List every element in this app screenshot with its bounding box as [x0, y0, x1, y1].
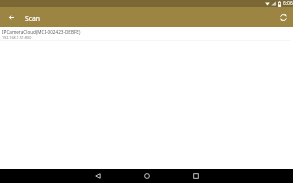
staticText: 192.168.1.51:800 [2, 35, 32, 40]
staticText: IPCameraCloud(MCI-002423-DEBFE) [2, 29, 81, 35]
staticText: Scan [25, 14, 41, 23]
staticText: 6:06 [283, 0, 293, 7]
button[interactable]: Home [133, 169, 161, 183]
button[interactable]: IPCameraCloud(MCI-002423-DEBFE) [0, 27, 293, 41]
button[interactable]: Back [84, 169, 112, 183]
button[interactable]: Recents [182, 169, 210, 183]
button[interactable]: Back [0, 7, 22, 27]
button[interactable]: Refresh [273, 7, 293, 27]
